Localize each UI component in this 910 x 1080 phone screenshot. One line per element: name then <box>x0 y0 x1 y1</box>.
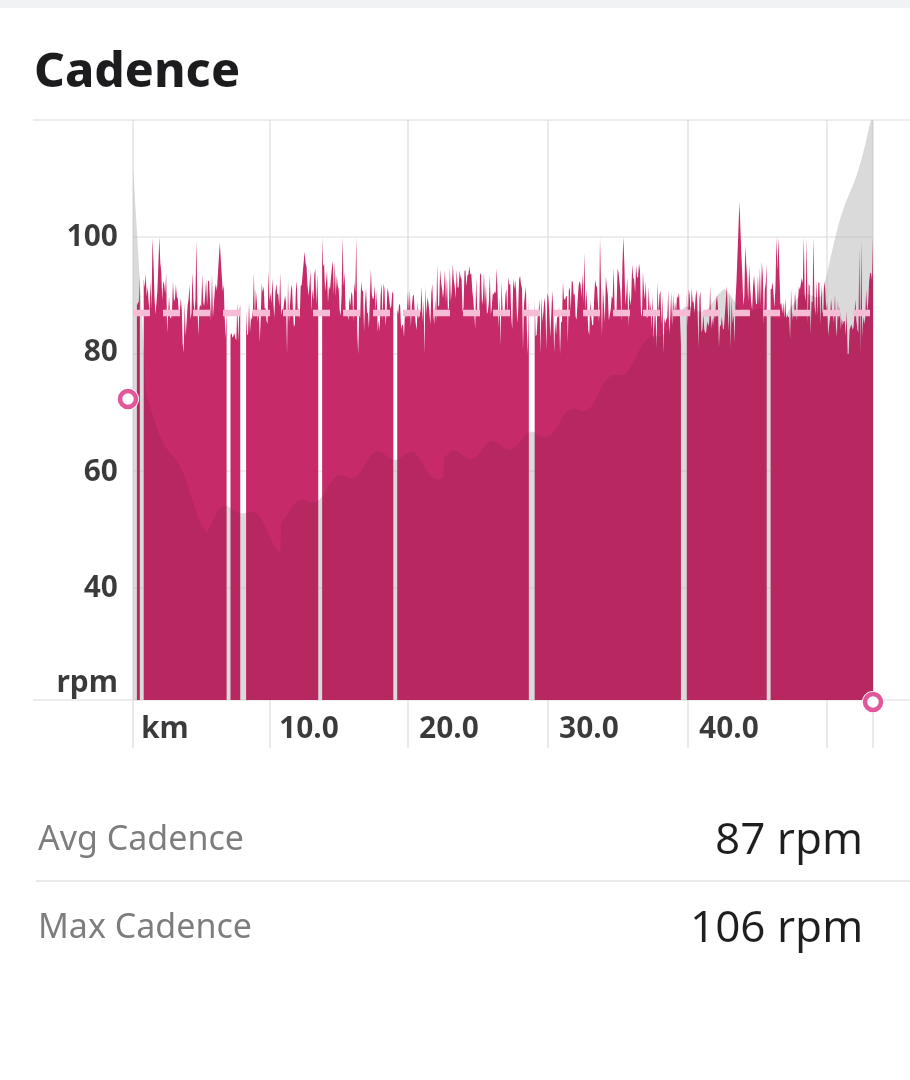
staticText: 20.0 <box>419 706 479 747</box>
staticText: Max Cadence <box>38 902 252 948</box>
staticText: 10.0 <box>279 706 339 747</box>
staticText: rpm <box>0 660 118 701</box>
staticText: 30.0 <box>559 706 619 747</box>
staticText: 40 <box>0 565 118 606</box>
staticText: 40.0 <box>699 706 759 747</box>
staticText: Avg Cadence <box>38 814 244 860</box>
staticText: 80 <box>0 329 118 370</box>
staticText: 60 <box>0 449 118 490</box>
staticText: 87 rpm <box>715 807 864 867</box>
button[interactable]: Avg Cadence <box>0 794 910 880</box>
staticText: 106 rpm <box>690 895 864 955</box>
staticText: km <box>141 706 189 747</box>
staticText: 100 <box>0 214 118 255</box>
staticText: Cadence <box>34 36 241 101</box>
button[interactable]: Max Cadence <box>0 882 910 968</box>
